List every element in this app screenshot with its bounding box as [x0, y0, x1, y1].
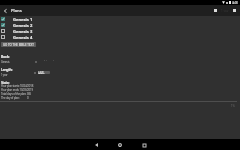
staticText: 1% [231, 104, 235, 108]
button[interactable]: Genesis 4 [0, 34, 240, 40]
button[interactable]: More options [231, 7, 238, 14]
staticText: 0 [27, 96, 29, 100]
staticText: GO TO THE BIBLE TEXT [3, 43, 34, 47]
staticText: 1 year [1, 73, 8, 77]
staticText: Genesis 4 [13, 35, 33, 41]
staticText: Book: [1, 54, 10, 59]
button[interactable]: Recent apps [139, 140, 149, 150]
staticText: Your plan starts: 10/24/2018 [1, 84, 34, 88]
staticText: 4:48 [232, 1, 238, 5]
button[interactable]: Select all [212, 7, 219, 14]
button[interactable]: Navigate up [2, 7, 9, 14]
staticText: The day of plan: [1, 96, 20, 100]
button[interactable]: Genesis 3 [0, 28, 240, 34]
staticText: Length: [1, 67, 13, 72]
staticText: SAVE PLAN [38, 71, 50, 74]
button[interactable]: GO TO THE BIBLE TEXT [1, 42, 36, 47]
staticText: 1 sav [221, 9, 229, 13]
staticText: Genesis [1, 60, 10, 64]
button[interactable]: Home [115, 140, 125, 150]
staticText: Genesis 3 [13, 29, 33, 35]
staticText: Total days of the plan: 365 [1, 92, 32, 96]
staticText: Your plan ends: 10/23/2019 [1, 88, 33, 92]
button[interactable]: 1 sav [221, 9, 229, 13]
staticText: Genesis 1 [13, 17, 33, 23]
button[interactable]: Genesis 1 [0, 16, 240, 22]
staticText: State: [1, 80, 10, 85]
staticText: Plans [11, 8, 22, 14]
button[interactable]: SAVE PLAN [38, 71, 50, 74]
staticText: Genesis 2 [13, 23, 33, 29]
button[interactable]: Back [91, 140, 101, 150]
button[interactable]: Genesis 2 [0, 22, 240, 28]
